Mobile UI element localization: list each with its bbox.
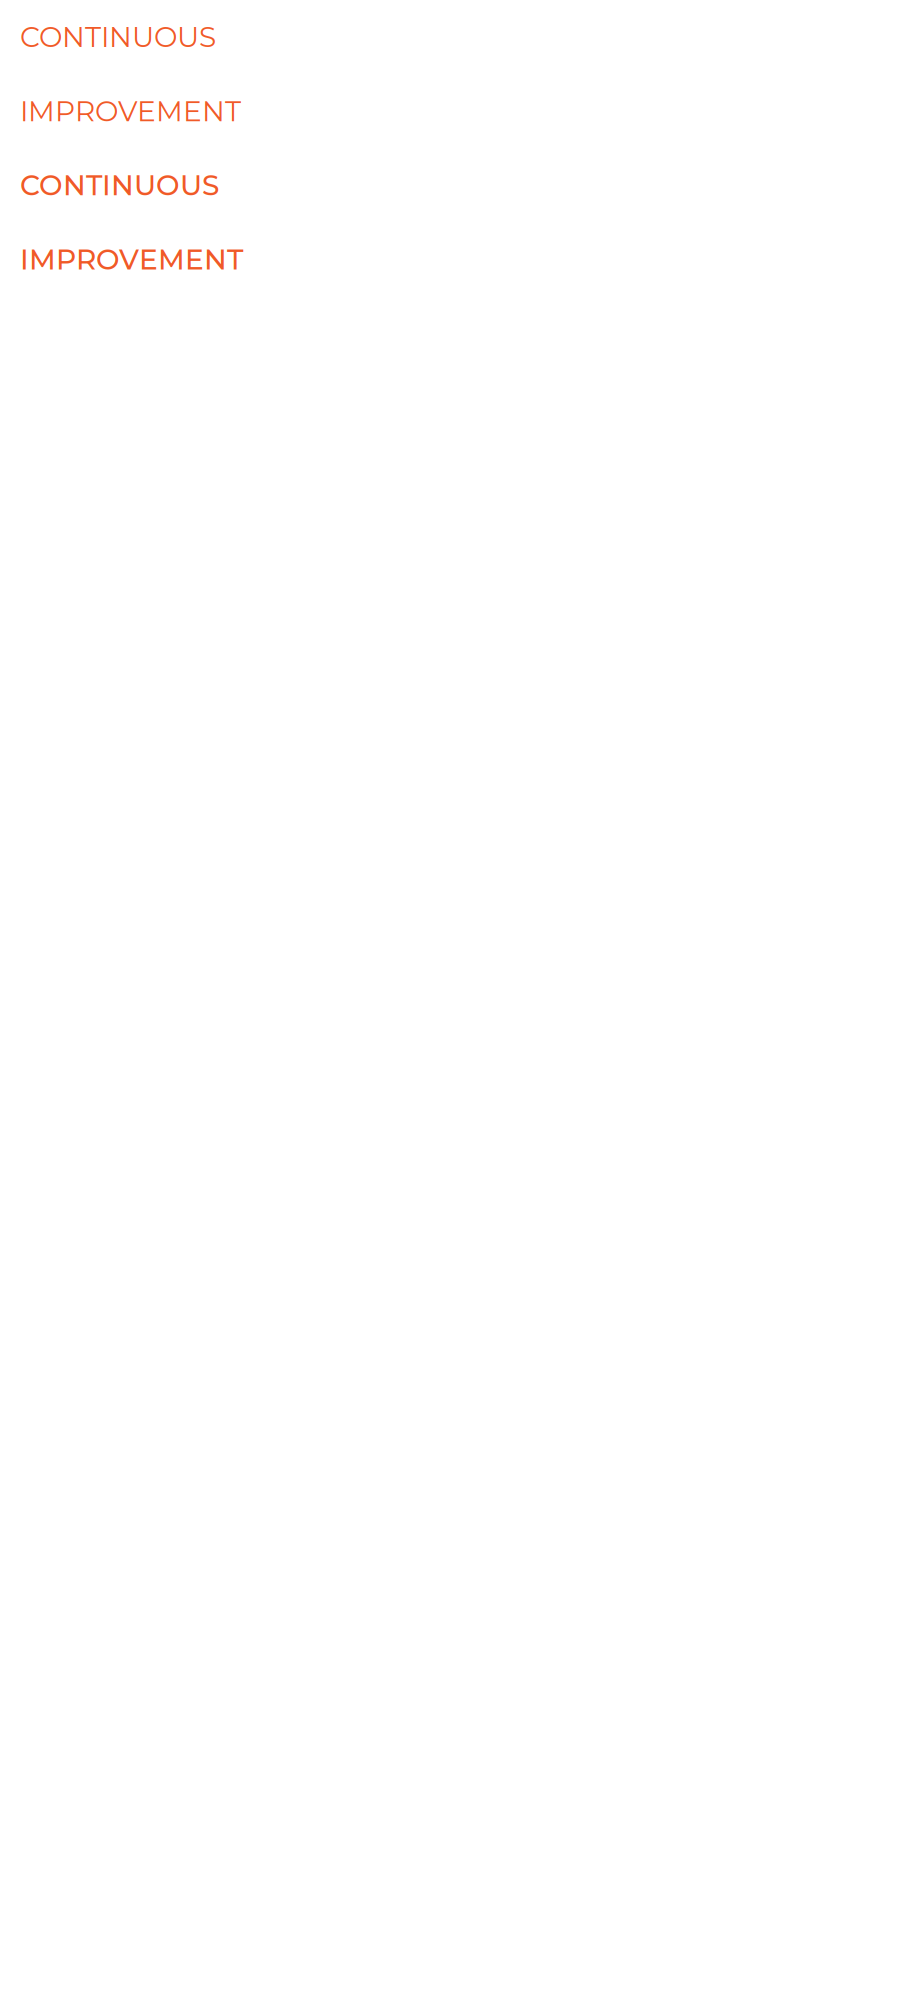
- staticText: IMPROVEMENT: [20, 242, 243, 276]
- staticText: IMPROVEMENT: [20, 94, 241, 128]
- staticText: CONTINUOUS: [20, 168, 219, 202]
- staticText: CONTINUOUS: [20, 20, 216, 54]
